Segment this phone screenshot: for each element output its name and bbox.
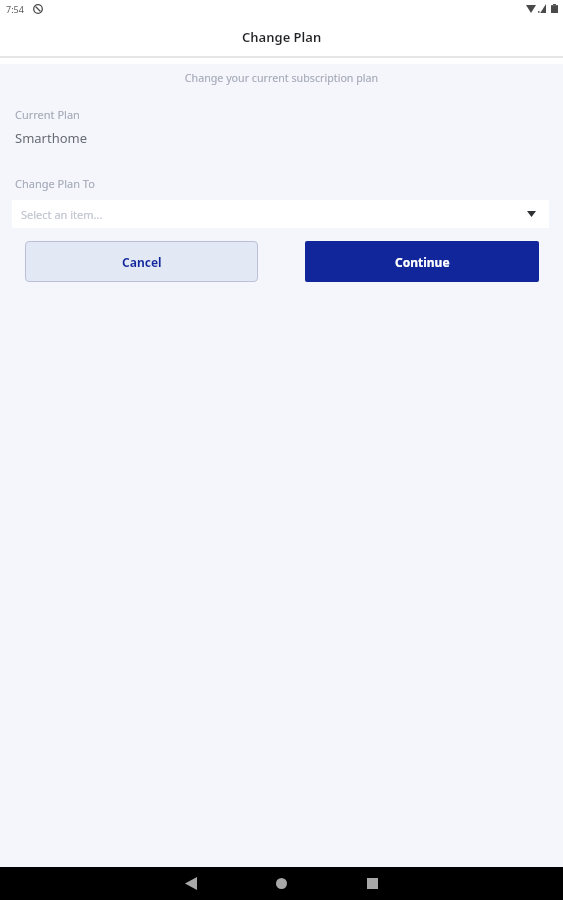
staticText: Change Plan xyxy=(242,28,322,46)
button[interactable]: Recent apps xyxy=(345,867,400,900)
staticText: Smarthome xyxy=(15,129,88,147)
button[interactable]: Back xyxy=(163,867,218,900)
staticText: 7:54 xyxy=(6,3,24,15)
button[interactable]: Home xyxy=(254,867,309,900)
staticText: Select an item... xyxy=(21,207,103,222)
button[interactable]: Cancel xyxy=(25,241,258,282)
button[interactable]: Select an item... xyxy=(12,200,549,228)
staticText: Cancel xyxy=(122,254,162,270)
staticText: Continue xyxy=(395,254,450,270)
staticText: Change your current subscription plan xyxy=(0,71,563,86)
button[interactable]: Continue xyxy=(305,241,539,282)
staticText: Current Plan xyxy=(15,107,80,122)
staticText: Change Plan To xyxy=(15,176,95,191)
